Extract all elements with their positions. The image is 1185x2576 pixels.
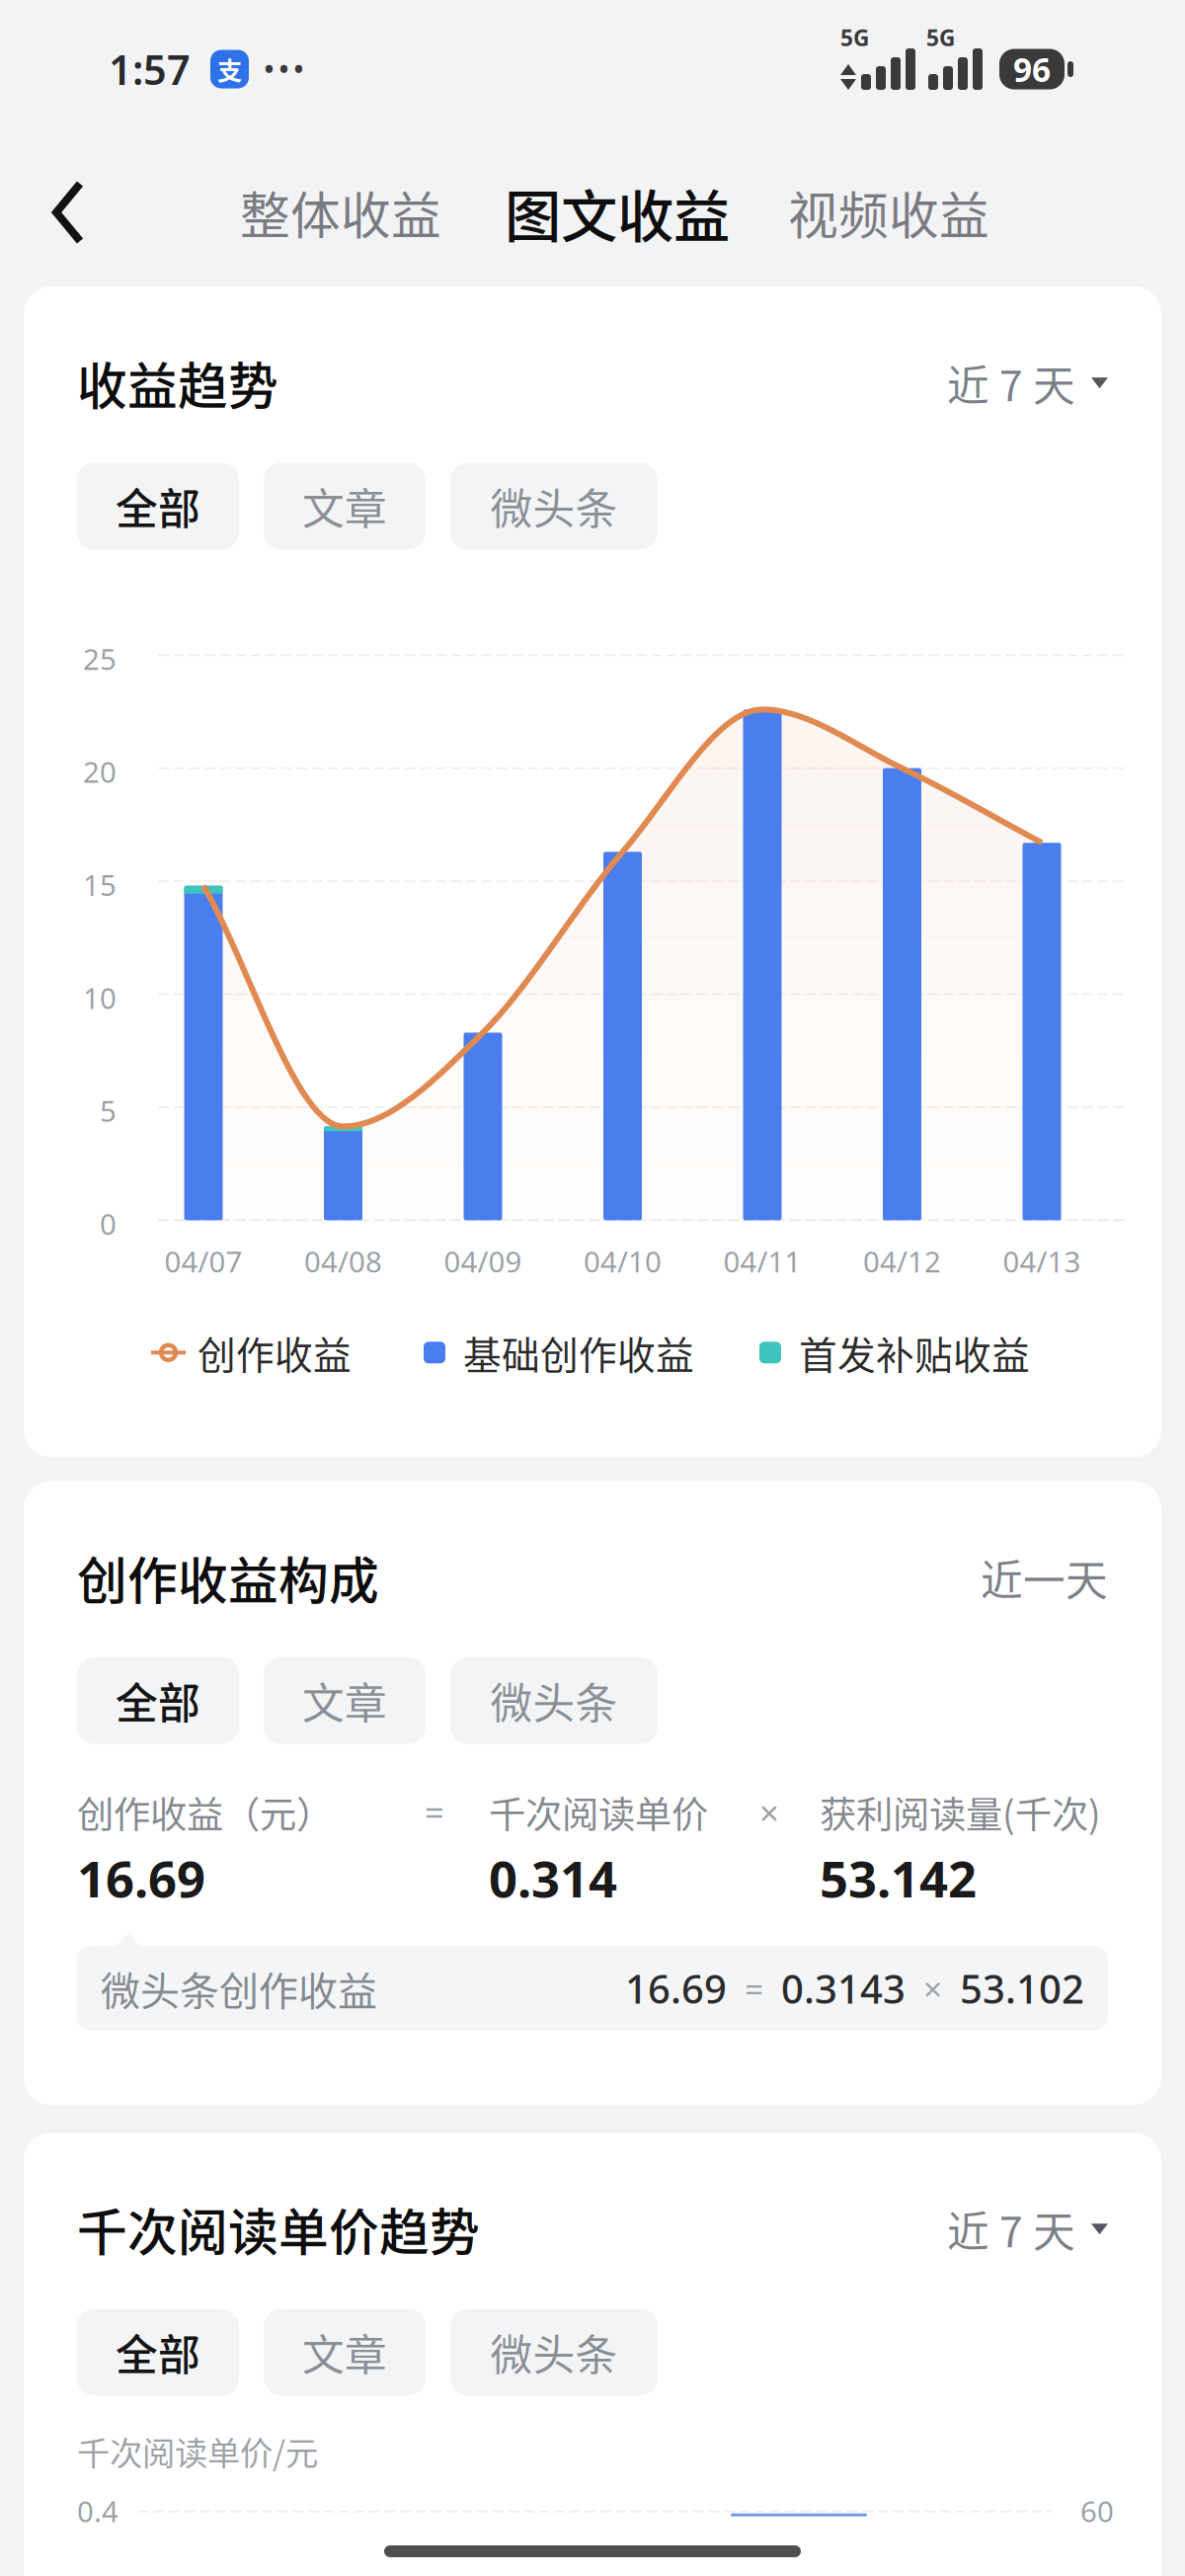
staticText: × [923, 1966, 942, 2010]
staticText: 全部 [116, 2322, 200, 2383]
button[interactable]: 近一天 [981, 1547, 1108, 1608]
staticText: 04/12 [863, 1242, 941, 1280]
staticText: 视频收益 [788, 176, 989, 249]
staticText: 0 [100, 1204, 117, 1243]
staticText: 获利阅读量(千次) [820, 1786, 1101, 1839]
staticText: 图文收益 [505, 171, 730, 253]
staticText: 15 [83, 865, 117, 904]
button[interactable]: Back [0, 154, 109, 271]
staticText: 微头条创作收益 [101, 1960, 377, 2017]
staticText: 支 [217, 51, 242, 87]
staticText: 基础创作收益 [463, 1325, 694, 1380]
staticText: 整体收益 [240, 176, 441, 249]
staticText: 5G [926, 23, 955, 52]
staticText: 千次阅读单价/元 [77, 2427, 318, 2475]
staticText: 文章 [302, 1670, 387, 1731]
staticText: 文章 [302, 2322, 387, 2383]
staticText: 10 [83, 978, 117, 1017]
button[interactable]: 整体收益 [232, 160, 449, 264]
staticText: 千次阅读单价 [489, 1786, 708, 1839]
staticText: 5G [840, 23, 869, 52]
staticText: 04/10 [584, 1242, 662, 1280]
staticText: 96 [1013, 47, 1051, 91]
staticText: 04/07 [164, 1242, 242, 1280]
staticText: 1:57 [109, 42, 191, 96]
button[interactable]: 微头条 [450, 2309, 658, 2396]
staticText: 04/11 [723, 1242, 801, 1280]
staticText: 0.3143 [781, 1962, 906, 2015]
staticText: • • • [265, 54, 303, 84]
staticText: 收益趋势 [77, 347, 278, 419]
staticText: 16.69 [625, 1962, 727, 2015]
staticText: 全部 [116, 476, 200, 537]
staticText: 04/09 [444, 1242, 522, 1280]
staticText: 5 [100, 1091, 117, 1130]
staticText: 微头条 [490, 476, 618, 537]
staticText: 千次阅读单价趋势 [77, 2193, 480, 2265]
staticText: 25 [83, 639, 117, 678]
staticText: 0.314 [489, 1845, 617, 1911]
staticText: = [425, 1789, 444, 1835]
staticText: 16.69 [77, 1845, 205, 1911]
staticText: 20 [83, 752, 117, 791]
button[interactable]: 微头条 [450, 1657, 658, 1744]
staticText: × [759, 1789, 779, 1835]
staticText: = [745, 1966, 763, 2010]
staticText: 53.142 [820, 1845, 977, 1911]
staticText: 文章 [302, 476, 387, 537]
button[interactable]: 文章 [264, 463, 426, 550]
staticText: 微头条 [490, 2322, 618, 2383]
staticText: 近 7 天 [947, 2199, 1075, 2260]
staticText: 近一天 [981, 1547, 1108, 1608]
staticText: 0.4 [77, 2492, 118, 2530]
button[interactable]: 文章 [264, 2309, 426, 2396]
button[interactable]: 近 7 天 [947, 352, 1108, 413]
staticText: 创作收益（元） [77, 1786, 333, 1839]
staticText: 微头条 [490, 1670, 618, 1731]
staticText: 创作收益构成 [77, 1541, 379, 1614]
button[interactable]: 近 7 天 [947, 2199, 1108, 2260]
staticText: 近 7 天 [947, 352, 1075, 413]
staticText: 53.102 [960, 1962, 1084, 2015]
button[interactable]: 图文收益 [497, 156, 738, 269]
staticText: 全部 [116, 1670, 200, 1731]
button[interactable]: 视频收益 [780, 160, 997, 264]
staticText: 60 [1080, 2492, 1114, 2530]
button[interactable]: 文章 [264, 1657, 426, 1744]
staticText: 首发补贴收益 [799, 1325, 1030, 1380]
staticText: 04/13 [1003, 1242, 1081, 1280]
staticText: 创作收益 [197, 1325, 352, 1380]
button[interactable]: 全部 [77, 463, 239, 550]
button[interactable]: 全部 [77, 2309, 239, 2396]
staticText: 04/08 [304, 1242, 382, 1280]
button[interactable]: 全部 [77, 1657, 239, 1744]
button[interactable]: 微头条 [450, 463, 658, 550]
